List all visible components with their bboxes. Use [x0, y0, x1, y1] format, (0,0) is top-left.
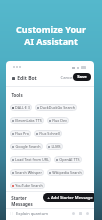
button[interactable]: Flux Pro: [10, 130, 31, 137]
staticText: Load Text from URL: [15, 157, 49, 162]
staticText: Messages: [11, 201, 33, 207]
button[interactable]: ElevenLabs TTS: [10, 117, 44, 124]
staticText: YouTube Search: [15, 183, 43, 188]
staticText: Flux Dev: [52, 118, 67, 123]
button[interactable]: Wikipedia Search: [47, 169, 84, 176]
button[interactable]: Search Whisper: [10, 169, 44, 176]
staticText: DALL·E 3: [15, 105, 30, 110]
button[interactable]: DALL·E 3: [10, 104, 32, 111]
staticText: LLMS: [51, 144, 61, 149]
button[interactable]: Flux Dev: [47, 117, 69, 124]
staticText: DuckDuckGo Search: [40, 105, 75, 110]
button[interactable]: + Add Starter Message: [43, 193, 94, 202]
staticText: Cancel: [60, 75, 74, 81]
staticText: Wikipedia Search: [52, 170, 82, 175]
button[interactable]: YouTube Search: [10, 182, 45, 189]
staticText: Save: [77, 74, 87, 80]
staticText: AI Assistant: [24, 35, 78, 47]
staticText: Flux Schnell: [39, 131, 60, 136]
staticText: Flux Pro: [15, 131, 29, 136]
staticText: Customize Your: [16, 23, 86, 35]
button[interactable]: Load Text from URL: [10, 156, 51, 163]
staticText: Tools: [11, 92, 23, 98]
staticText: Search Whisper: [15, 170, 42, 175]
button[interactable]: DuckDuckGo Search: [35, 104, 77, 111]
button[interactable]: Google Search: [10, 143, 43, 150]
staticText: Edit Bot: [17, 75, 37, 82]
button[interactable]: LLMS: [46, 143, 63, 150]
button[interactable]: Flux Schnell: [34, 130, 62, 137]
staticText: Starter: [11, 195, 27, 201]
staticText: Google Search: [15, 144, 41, 149]
button[interactable]: Save: [73, 73, 91, 81]
staticText: ElevenLabs TTS: [15, 118, 42, 123]
staticText: + Add Starter Message: [47, 195, 93, 201]
staticText: Explain quantum: [16, 211, 48, 216]
button[interactable]: OpenAI TTS: [54, 156, 82, 163]
staticText: OpenAI TTS: [59, 157, 80, 162]
